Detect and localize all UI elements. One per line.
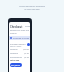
staticText: Review your order and confirm the paymen… bbox=[10, 29, 30, 41]
button[interactable]: Selected payment card bbox=[27, 43, 30, 46]
staticText: $4.50 bbox=[24, 52, 29, 55]
staticText: Protected by Stripe bbox=[13, 37, 30, 39]
button[interactable]: Pay $56.35 bbox=[10, 63, 22, 67]
button[interactable]: Cancel bbox=[25, 25, 30, 27]
staticText: Shipping bbox=[10, 52, 18, 55]
staticText: Accept payments anywhere in your own app bbox=[19, 5, 45, 11]
staticText: Total due bbox=[10, 59, 20, 62]
staticText: Subtotal bbox=[10, 48, 18, 51]
staticText: $3.85 bbox=[24, 56, 29, 59]
staticText: Payment method bbox=[10, 43, 26, 46]
staticText: $48.00 bbox=[23, 48, 29, 51]
staticText: Checkout bbox=[10, 25, 23, 29]
button[interactable]: Protected by Stripe bbox=[9, 36, 30, 40]
staticText: Visa •••• 4242 bbox=[10, 45, 22, 47]
staticText: Cancel bbox=[25, 25, 30, 27]
staticText: Estimated tax bbox=[10, 56, 23, 59]
staticText: Pay $56.35 bbox=[11, 64, 21, 66]
